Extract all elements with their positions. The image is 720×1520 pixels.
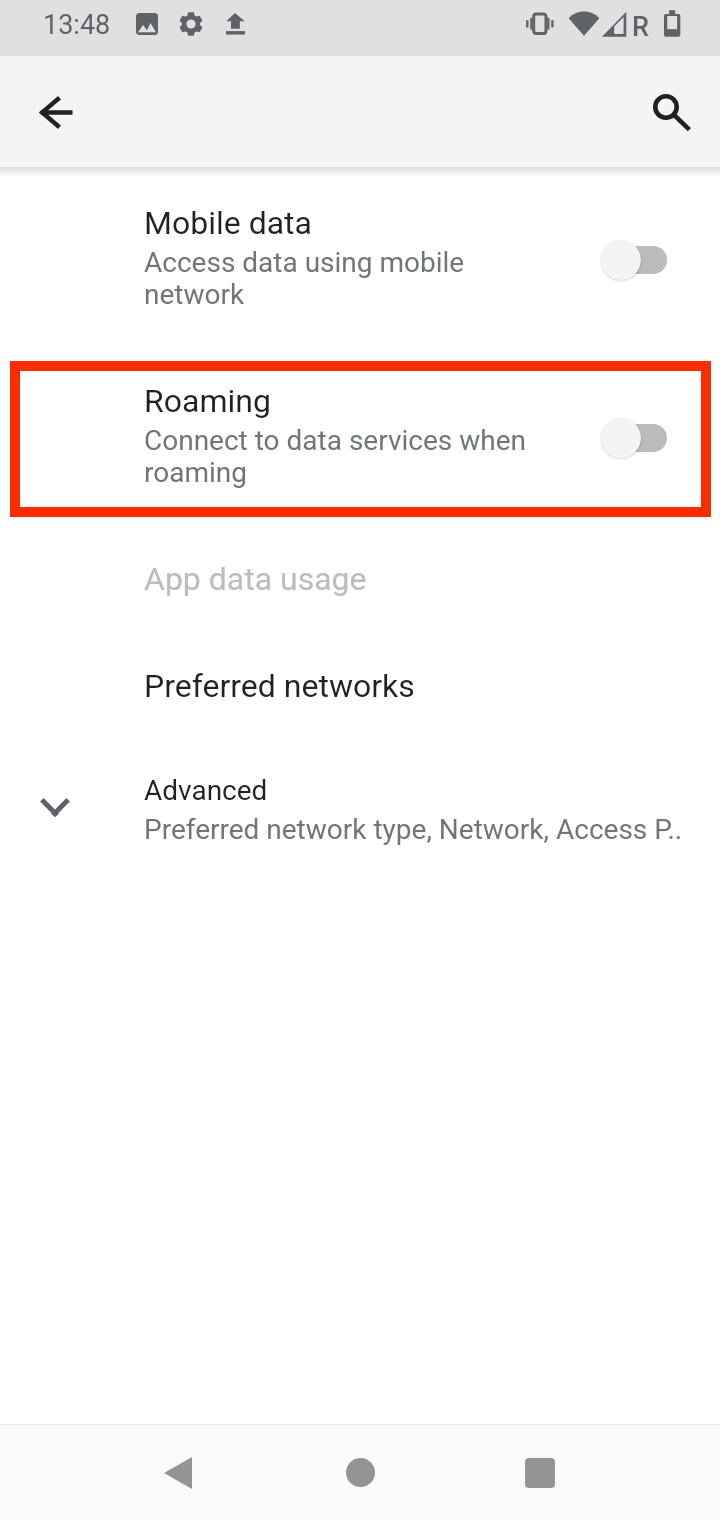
- button[interactable]: Navigate up: [16, 72, 96, 152]
- button[interactable]: App data usage: [0, 552, 720, 612]
- staticText: Preferred networks: [144, 667, 415, 705]
- staticText: R: [632, 11, 649, 43]
- button[interactable]: Search: [631, 72, 711, 152]
- button[interactable]: Preferred networks: [0, 659, 720, 719]
- button[interactable]: Mobile data: [0, 196, 720, 344]
- staticText: Mobile data: [144, 204, 312, 242]
- staticText: 13:48: [43, 9, 111, 41]
- staticText: App data usage: [144, 560, 367, 598]
- button[interactable]: Back: [118, 1425, 238, 1520]
- staticText: Roaming: [144, 382, 271, 420]
- other: Expand advanced: [41, 796, 71, 818]
- staticText: Preferred network type, Network, Access …: [144, 813, 683, 846]
- button[interactable]: Home: [300, 1425, 420, 1520]
- staticText: Connect to data services when roaming: [144, 424, 534, 489]
- staticText: Advanced: [144, 774, 268, 807]
- staticText: Access data using mobile network: [144, 246, 534, 311]
- button[interactable]: Roaming: [0, 374, 720, 522]
- button[interactable]: Expand advanced: [0, 764, 720, 874]
- button[interactable]: Recent apps: [480, 1425, 600, 1520]
